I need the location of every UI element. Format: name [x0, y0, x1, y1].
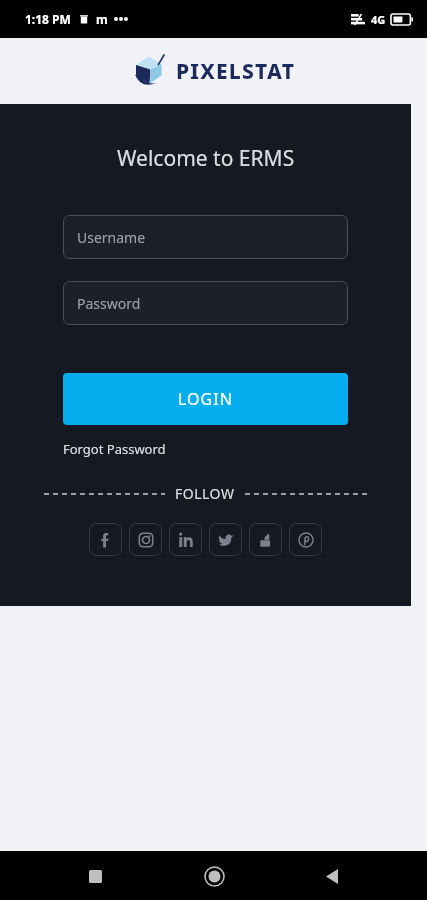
staticText: 4G [371, 12, 386, 27]
staticText: 1:18 PM [25, 11, 71, 27]
staticText: Forgot Password [63, 440, 166, 458]
button[interactable]: Username [63, 215, 348, 259]
staticText: Welcome to ERMS [117, 144, 295, 173]
button[interactable]: Forgot Password [63, 440, 166, 458]
button[interactable]: YouTube [249, 523, 282, 556]
button[interactable]: Home [190, 852, 238, 900]
button[interactable]: LinkedIn [169, 523, 202, 556]
button[interactable]: Twitter [209, 523, 242, 556]
button[interactable]: Pinterest [289, 523, 322, 556]
button[interactable]: Password [63, 281, 348, 325]
staticText: PIXELSTAT [176, 57, 296, 86]
staticText: Username [77, 228, 146, 247]
staticText: Password [77, 294, 141, 313]
staticText: FOLLOW [175, 484, 235, 503]
staticText: m [96, 11, 108, 27]
staticText: LOGIN [178, 388, 233, 410]
button[interactable]: Back [308, 852, 356, 900]
button[interactable]: Recents [71, 852, 119, 900]
button[interactable]: Facebook [89, 523, 122, 556]
button[interactable]: Instagram [129, 523, 162, 556]
button[interactable]: LOGIN [63, 373, 348, 425]
